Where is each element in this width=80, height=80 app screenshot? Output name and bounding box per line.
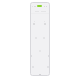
button[interactable] [37,5,42,7]
